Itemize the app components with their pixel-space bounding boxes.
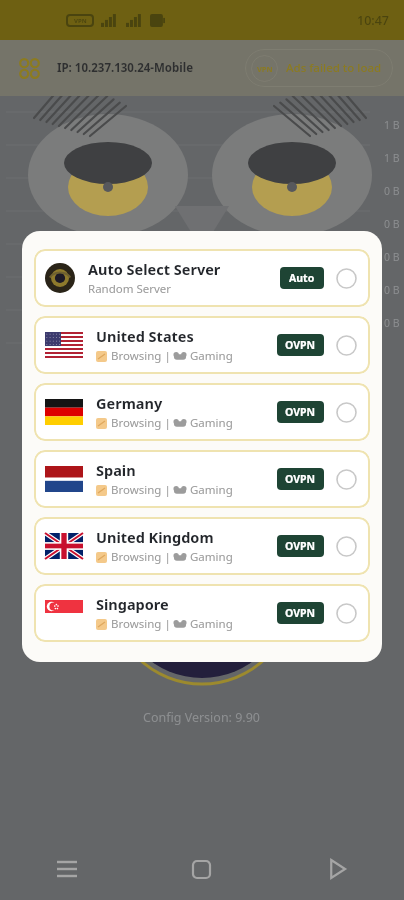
- staticText: Gaming: [190, 549, 233, 565]
- button[interactable]: Singapore: [34, 584, 370, 642]
- staticText: OVPN: [285, 472, 316, 486]
- staticText: Gaming: [190, 415, 233, 431]
- staticText: Browsing |: [111, 616, 174, 632]
- staticText: 0 B: [384, 316, 400, 330]
- staticText: Random Server: [88, 281, 172, 297]
- button[interactable]: Spain: [34, 450, 370, 508]
- button[interactable]: Germany: [34, 383, 370, 441]
- button[interactable]: Auto Select Server: [34, 249, 370, 307]
- staticText: Browsing |: [111, 348, 174, 364]
- staticText: 0 B: [384, 250, 400, 264]
- staticText: VPN: [74, 17, 87, 25]
- staticText: VPN: [257, 64, 273, 74]
- button[interactable]: Back: [269, 838, 404, 900]
- staticText: 0 B: [384, 283, 400, 297]
- staticText: OVPN: [285, 405, 316, 419]
- staticText: United States: [96, 326, 194, 346]
- button[interactable]: Home: [134, 838, 269, 900]
- staticText: Auto Select Server: [88, 259, 221, 279]
- staticText: United Kingdom: [96, 527, 214, 547]
- staticText: Singapore: [96, 594, 169, 614]
- staticText: OVPN: [285, 606, 316, 620]
- button[interactable]: Recent apps: [0, 838, 134, 900]
- staticText: Config Version: 9.90: [143, 709, 261, 726]
- staticText: OVPN: [285, 539, 316, 553]
- staticText: 1 B: [384, 118, 400, 132]
- staticText: 0 B: [384, 217, 400, 231]
- staticText: 10:47: [357, 12, 390, 29]
- staticText: Browsing |: [111, 549, 174, 565]
- staticText: Auto: [289, 271, 315, 285]
- button[interactable]: VPN: [245, 49, 393, 87]
- button[interactable]: United States: [34, 316, 370, 374]
- staticText: Germany: [96, 393, 163, 413]
- staticText: OVPN: [285, 338, 316, 352]
- staticText: 0 B: [384, 184, 400, 198]
- staticText: Browsing |: [111, 482, 174, 498]
- staticText: Gaming: [190, 616, 233, 632]
- staticText: Gaming: [190, 482, 233, 498]
- staticText: Gaming: [190, 348, 233, 364]
- button[interactable]: United Kingdom: [34, 517, 370, 575]
- staticText: 1 B: [384, 151, 400, 165]
- staticText: IP: 10.237.130.24-Mobile: [57, 60, 194, 76]
- staticText: Browsing |: [111, 415, 174, 431]
- staticText: Ads failed to load: [286, 60, 382, 76]
- button[interactable]: Menu: [13, 52, 45, 84]
- staticText: Spain: [96, 460, 136, 480]
